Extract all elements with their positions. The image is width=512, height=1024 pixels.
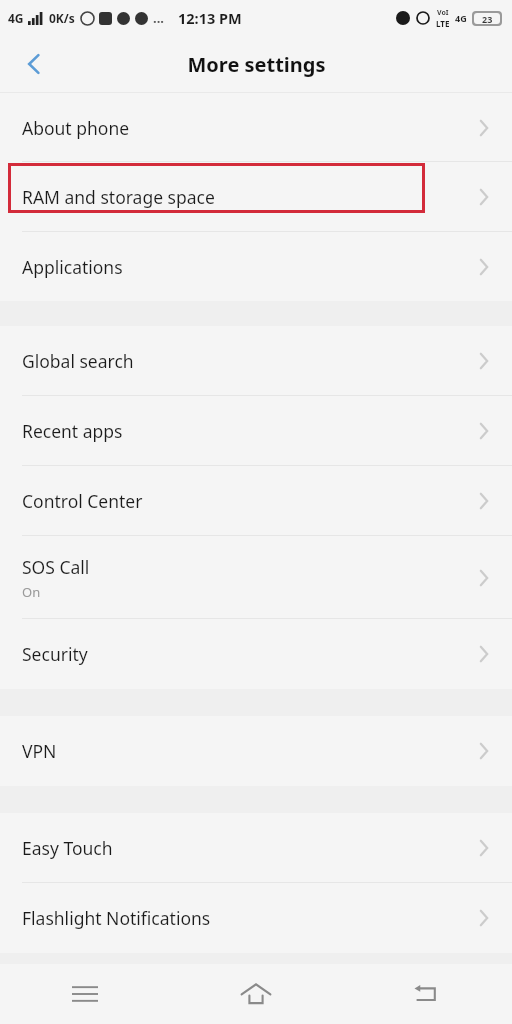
- button[interactable]: Back: [10, 40, 58, 88]
- button[interactable]: Recent apps: [0, 964, 170, 1024]
- staticText: Security: [22, 642, 88, 666]
- staticText: ...: [153, 9, 164, 27]
- staticText: 12:13 PM: [178, 8, 242, 28]
- button[interactable]: Security: [0, 619, 512, 689]
- staticText: Easy Touch: [22, 836, 113, 860]
- staticText: SOS Call: [22, 555, 90, 579]
- staticText: 23: [482, 13, 493, 24]
- button[interactable]: Applications: [0, 232, 512, 301]
- staticText: VoI: [437, 8, 449, 18]
- button[interactable]: RAM and storage space: [0, 162, 512, 232]
- staticText: 0K/s: [49, 10, 75, 26]
- staticText: LTE: [436, 18, 450, 29]
- staticText: Global search: [22, 349, 134, 373]
- staticText: Applications: [22, 255, 123, 279]
- button[interactable]: Control Center: [0, 466, 512, 536]
- staticText: Control Center: [22, 489, 143, 513]
- button[interactable]: Home: [170, 964, 341, 1024]
- staticText: 4G: [455, 12, 467, 24]
- staticText: More settings: [187, 51, 326, 78]
- button[interactable]: SOS Call: [0, 536, 512, 619]
- button[interactable]: Global search: [0, 326, 512, 396]
- button[interactable]: Easy Touch: [0, 813, 512, 883]
- staticText: 4G: [8, 10, 24, 26]
- staticText: About phone: [22, 116, 130, 140]
- staticText: Recent apps: [22, 419, 123, 443]
- staticText: On: [22, 583, 41, 601]
- button[interactable]: Back: [341, 964, 512, 1024]
- button[interactable]: Flashlight Notifications: [0, 883, 512, 953]
- button[interactable]: Recent apps: [0, 396, 512, 466]
- button[interactable]: About phone: [0, 93, 512, 162]
- button[interactable]: VPN: [0, 716, 512, 786]
- staticText: VPN: [22, 739, 57, 763]
- staticText: RAM and storage space: [22, 185, 215, 209]
- staticText: Flashlight Notifications: [22, 906, 211, 930]
